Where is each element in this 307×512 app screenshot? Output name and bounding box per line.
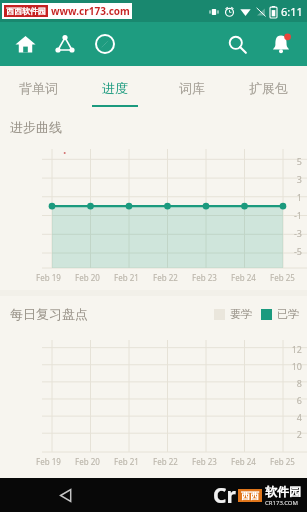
staticText: 10 xyxy=(261,360,302,372)
button[interactable]: Notifications xyxy=(264,27,298,61)
staticText: 背单词 xyxy=(19,80,58,96)
button[interactable]: Explore xyxy=(89,28,121,60)
button[interactable]: 扩展包 xyxy=(230,66,307,110)
staticText: 要学 xyxy=(230,307,252,321)
staticText: 5 xyxy=(261,155,302,167)
button[interactable]: 背单词 xyxy=(0,66,76,110)
staticText: Feb 23 xyxy=(192,456,217,467)
staticText: 2 xyxy=(261,428,302,440)
staticText: 进度 xyxy=(102,80,128,96)
staticText: www.cr173.com xyxy=(51,4,130,18)
staticText: 西西 xyxy=(241,490,259,501)
staticText: Feb 24 xyxy=(231,456,256,467)
staticText: 8 xyxy=(261,377,302,389)
staticText: 4 xyxy=(261,411,302,423)
button[interactable]: 词库 xyxy=(153,66,230,110)
staticText: -3 xyxy=(261,227,302,239)
staticText: 软件园 xyxy=(265,484,301,499)
staticText: 1 xyxy=(261,191,302,203)
staticText: Feb 20 xyxy=(75,456,100,467)
staticText: Feb 19 xyxy=(36,272,61,283)
staticText: 已学 xyxy=(277,307,299,321)
staticText: 6:11 xyxy=(281,4,303,19)
staticText: Feb 25 xyxy=(270,456,295,467)
button[interactable]: Home xyxy=(9,28,41,60)
staticText: Feb 25 xyxy=(270,272,295,283)
staticText: 每日复习盘点 xyxy=(10,306,88,322)
staticText: -1 xyxy=(261,209,302,221)
staticText: 12 xyxy=(261,343,302,355)
staticText: -5 xyxy=(261,245,302,257)
staticText: CR173.COM xyxy=(265,499,298,507)
staticText: Feb 20 xyxy=(75,272,100,283)
button[interactable]: 进度 xyxy=(76,66,153,110)
staticText: Feb 22 xyxy=(153,272,178,283)
staticText: 词库 xyxy=(179,80,205,96)
staticText: Feb 21 xyxy=(114,272,139,283)
staticText: Feb 19 xyxy=(36,456,61,467)
button[interactable]: Back xyxy=(52,482,78,508)
staticText: 进步曲线 xyxy=(10,119,62,135)
staticText: 扩展包 xyxy=(249,80,288,96)
staticText: Feb 21 xyxy=(114,456,139,467)
button[interactable]: Search xyxy=(220,27,254,61)
staticText: 6 xyxy=(261,394,302,406)
staticText: Feb 23 xyxy=(192,272,217,283)
staticText: 西西软件园 xyxy=(6,6,46,16)
staticText: Feb 24 xyxy=(231,272,256,283)
staticText: Cr xyxy=(213,481,236,510)
staticText: 3 xyxy=(261,173,302,185)
staticText: Feb 22 xyxy=(153,456,178,467)
button[interactable]: Share xyxy=(49,28,81,60)
